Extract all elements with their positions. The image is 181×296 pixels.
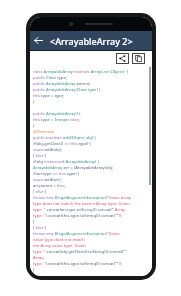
staticText: throw new IllegalArgumentException("Give… — [33, 195, 132, 201]
staticText: ArrayableArray arr = (ArrayableArray)obj… — [33, 165, 114, 171]
staticText: if(obj.getClass() == this.type) { — [33, 141, 91, 147]
staticText: type: ").concat(this.type.toString()).co… — [33, 261, 123, 267]
staticText: super.add(arr); — [33, 177, 62, 183]
staticText: super.add(obj); — [33, 147, 63, 153]
button[interactable]: Share — [116, 53, 129, 64]
button[interactable]: Back — [30, 32, 47, 49]
staticText: class ArrayableArray extends ArrayList<O… — [33, 69, 129, 75]
staticText: throw new IllegalArgumentException("Give… — [33, 231, 120, 237]
staticText: } else { — [33, 189, 47, 195]
staticText: } else { — [33, 225, 47, 231]
staticText: type: ".concat(arr.type.toString()).conc… — [33, 207, 126, 213]
staticText: public boolean add(Object obj) { — [33, 135, 96, 141]
staticText: public Class type; — [33, 75, 67, 81]
staticText: the Array value type. Given — [33, 243, 86, 249]
staticText: Array — [33, 255, 44, 261]
staticText: <ArrayableArray 2> — [50, 35, 133, 47]
staticText: this.type = type; — [33, 93, 65, 99]
staticText: } else { — [33, 153, 47, 159]
staticText: public ArrayableArray parent; — [33, 81, 91, 87]
staticText: } — [33, 99, 35, 105]
staticText: if(arr.type == this.type) { — [33, 171, 80, 177]
staticText: value type does not match — [33, 237, 85, 243]
button[interactable]: Copy — [132, 53, 145, 64]
staticText: type: ".concat(obj.getClass().toString()… — [33, 249, 127, 255]
staticText: public ArrayableArray() { — [33, 111, 81, 117]
staticText: @Override — [33, 129, 55, 135]
staticText: this.type = Integer.class; — [33, 117, 81, 123]
staticText: type does not match the parent Array typ… — [33, 201, 130, 207]
staticText: } — [33, 219, 35, 225]
staticText: type: ").concat(this.type.toString()).co… — [33, 213, 123, 219]
staticText: arr.parent = this; — [33, 183, 66, 189]
staticText: if(obj instanceof ArrayableArray) { — [33, 159, 99, 165]
staticText: } — [33, 123, 35, 129]
staticText: public ArrayableArray(Class type) { — [33, 87, 101, 93]
staticText: } — [33, 267, 35, 273]
